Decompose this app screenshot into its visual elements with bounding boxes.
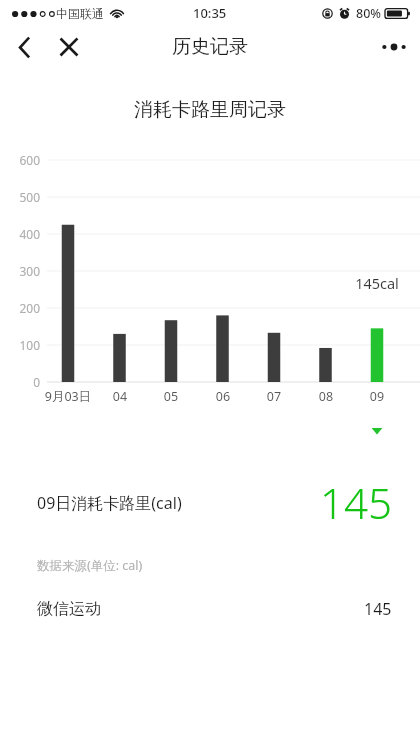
button[interactable]: 09日消耗卡路里(cal) — [0, 474, 420, 531]
staticText: 145 — [320, 474, 392, 531]
staticText: 09 — [337, 388, 417, 405]
staticText: 9月03日 — [28, 388, 108, 405]
staticText: 300 — [0, 263, 40, 279]
staticText: 100 — [0, 337, 40, 353]
staticText: 04 — [80, 388, 160, 405]
staticText: 200 — [0, 300, 40, 316]
button[interactable]: 微信运动 — [0, 598, 420, 620]
staticText: 145 — [364, 598, 392, 620]
staticText: 06 — [183, 388, 263, 405]
staticText: 0 — [0, 374, 40, 390]
staticText: 05 — [131, 388, 211, 405]
staticText: 08 — [286, 388, 366, 405]
staticText: 145cal — [337, 273, 417, 293]
button[interactable]: Back — [4, 27, 44, 67]
button[interactable]: Close — [49, 27, 89, 67]
staticText: 600 — [0, 152, 40, 168]
staticText: 80% — [356, 5, 381, 22]
staticText: 09日消耗卡路里(cal) — [37, 492, 182, 514]
staticText: 中国联通 — [56, 6, 104, 21]
staticText: 历史记录 — [172, 35, 248, 59]
staticText: 微信运动 — [37, 599, 101, 619]
staticText: 消耗卡路里周记录 — [0, 98, 420, 122]
staticText: 500 — [0, 189, 40, 205]
button[interactable]: More options — [372, 26, 416, 68]
staticText: 10:35 — [193, 4, 227, 22]
staticText: 07 — [234, 388, 314, 405]
staticText: 400 — [0, 226, 40, 242]
staticText: 数据来源(单位: cal) — [37, 557, 143, 574]
